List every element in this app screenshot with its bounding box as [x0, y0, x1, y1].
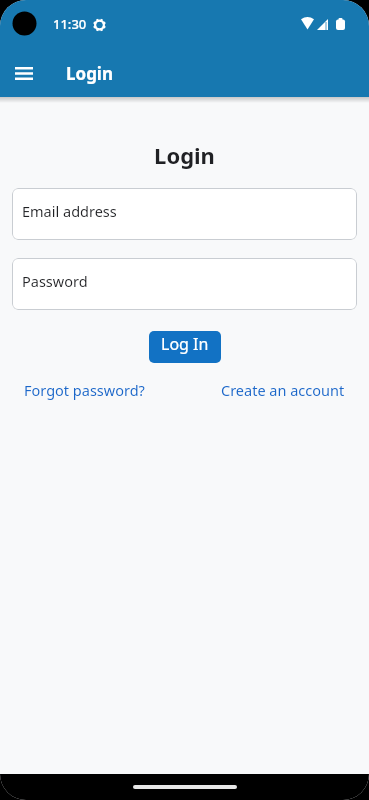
staticText: Login [66, 62, 114, 85]
staticText: Password [22, 271, 88, 291]
button[interactable]: Password [12, 258, 357, 310]
button[interactable]: Email address [12, 188, 357, 240]
staticText: Login [0, 140, 369, 170]
staticText: Log In [161, 333, 209, 355]
button[interactable] [0, 49, 48, 97]
button[interactable]: Create an account [221, 380, 345, 400]
staticText: Email address [22, 201, 117, 221]
staticText: 11:30 [53, 15, 87, 33]
button[interactable]: Forgot password? [24, 380, 145, 400]
button[interactable]: Log In [149, 331, 221, 363]
